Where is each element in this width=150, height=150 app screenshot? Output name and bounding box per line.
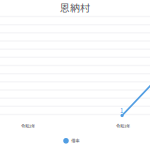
staticText: 恩納村 [60, 0, 90, 14]
staticText: 借率 [71, 138, 79, 144]
staticText: 1 [120, 106, 123, 115]
button[interactable]: 借率 [63, 138, 79, 144]
staticText: 令和2年 [21, 123, 35, 129]
staticText: 令和3年 [116, 123, 130, 129]
